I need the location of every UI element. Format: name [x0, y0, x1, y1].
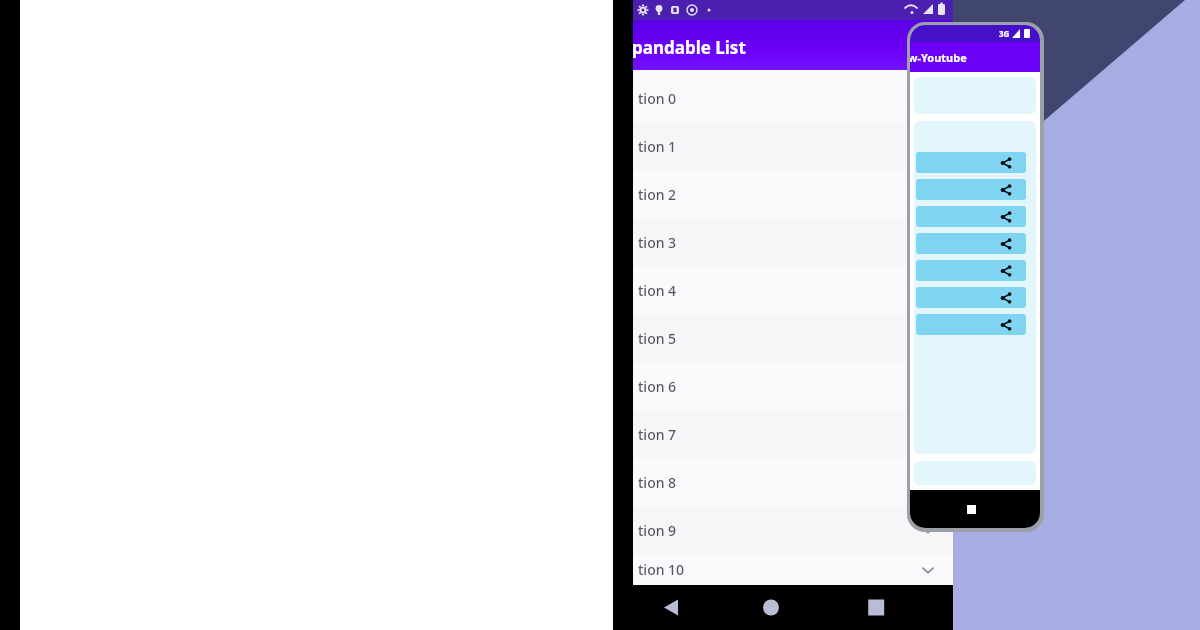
- button[interactable]: Expand section 9: [911, 513, 945, 547]
- staticText: tion 6: [638, 377, 677, 396]
- button[interactable]: tion 1: [633, 122, 953, 170]
- button[interactable]: tion 2: [633, 170, 953, 218]
- staticText: tion 5: [638, 329, 677, 348]
- button[interactable]: tion 3: [633, 218, 953, 266]
- staticText: tion 2: [638, 185, 677, 204]
- button[interactable]: Share: [916, 287, 1026, 308]
- button[interactable]: Expand section 1: [911, 129, 945, 163]
- button[interactable]: Recents: [846, 585, 953, 630]
- staticText: tion 1: [638, 137, 677, 156]
- button[interactable]: Back: [633, 585, 739, 630]
- button[interactable]: Share: [916, 314, 1026, 335]
- button[interactable]: tion 4: [633, 266, 953, 314]
- button[interactable]: Expand section 6: [911, 369, 945, 403]
- staticText: 3G: [999, 28, 1010, 39]
- button[interactable]: tion 10: [633, 554, 953, 585]
- button[interactable]: Share: [916, 179, 1026, 200]
- staticText: tion 8: [638, 473, 677, 492]
- button[interactable]: Expand section 10: [911, 554, 945, 585]
- button[interactable]: Expand section 5: [911, 321, 945, 355]
- button[interactable]: Expand section 4: [911, 273, 945, 307]
- button[interactable]: Expand section 0: [911, 81, 945, 115]
- button[interactable]: tion 5: [633, 314, 953, 362]
- button[interactable]: tion 8: [633, 458, 953, 506]
- button[interactable]: Home: [739, 585, 846, 630]
- staticText: tion 7: [638, 425, 677, 444]
- staticText: tion 4: [638, 281, 677, 300]
- button[interactable]: Expand section 8: [911, 465, 945, 499]
- button[interactable]: tion 7: [633, 410, 953, 458]
- button[interactable]: Share: [916, 206, 1026, 227]
- button[interactable]: Share: [916, 260, 1026, 281]
- button[interactable]: Expand section 2: [911, 177, 945, 211]
- button[interactable]: Share: [916, 233, 1026, 254]
- button[interactable]: Expand section 7: [911, 417, 945, 451]
- button[interactable]: tion 9: [633, 506, 953, 554]
- staticText: tion 10: [638, 560, 685, 579]
- staticText: pandable List: [632, 36, 746, 59]
- staticText: tion 9: [638, 521, 677, 540]
- button[interactable]: tion 0: [633, 74, 953, 122]
- button[interactable]: tion 6: [633, 362, 953, 410]
- staticText: tion 0: [638, 89, 677, 108]
- staticText: w-Youtube: [910, 50, 967, 65]
- button[interactable]: Share: [916, 152, 1026, 173]
- staticText: tion 3: [638, 233, 677, 252]
- button[interactable]: Expand section 3: [911, 225, 945, 259]
